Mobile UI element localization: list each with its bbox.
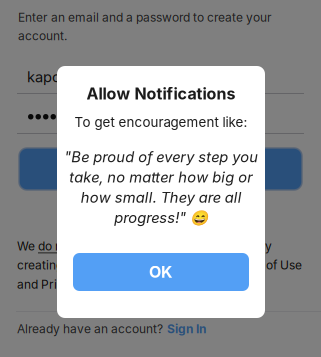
button[interactable]: Sign Up xyxy=(19,148,302,190)
staticText: OK xyxy=(149,262,173,282)
staticText: Allow Notifications xyxy=(86,84,235,103)
staticText: Enter an email and a password to create … xyxy=(18,10,272,43)
staticText: Sign In xyxy=(167,322,206,336)
button[interactable]: Already have an account? xyxy=(0,311,321,347)
staticText: Sign Up xyxy=(130,159,190,179)
staticText: Already have an account? xyxy=(17,322,163,336)
staticText: To get encouragement like: xyxy=(74,114,247,130)
button[interactable]: OK xyxy=(73,253,249,291)
staticText: "Be proud of every step you take, no mat… xyxy=(64,148,258,226)
staticText: kapoorsahabdelhi@gmail.com xyxy=(27,68,239,86)
staticText: We do not sell your information to anyon… xyxy=(17,239,302,291)
